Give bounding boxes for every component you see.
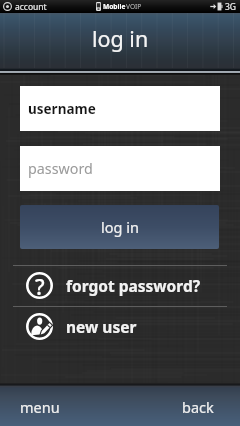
button[interactable]: menu	[0, 383, 120, 426]
button[interactable]: password	[20, 146, 220, 191]
staticText: username	[28, 100, 96, 118]
button[interactable]: New user	[0, 306, 240, 347]
button[interactable]: username	[20, 86, 220, 131]
staticText: forgot password?	[66, 275, 201, 296]
button[interactable]: back	[120, 383, 240, 426]
staticText: password	[28, 159, 93, 178]
staticText: new user	[66, 316, 137, 337]
button[interactable]: Forgot password	[0, 265, 240, 306]
staticText: VOIP	[126, 2, 142, 11]
staticText: log in	[92, 24, 149, 53]
staticText: log in	[101, 217, 139, 237]
staticText: menu	[20, 397, 60, 417]
staticText: Mobile	[103, 2, 126, 11]
staticText: 3G	[225, 1, 237, 13]
staticText: account	[15, 1, 47, 13]
staticText: back	[182, 397, 214, 417]
staticText: ?	[35, 272, 45, 299]
button[interactable]: log in	[20, 205, 219, 249]
